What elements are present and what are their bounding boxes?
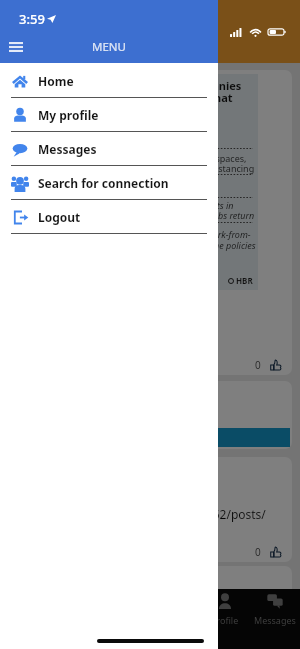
button[interactable]: Network	[50, 589, 100, 649]
staticText: Search for connection	[38, 175, 169, 191]
staticText: What companies	[150, 78, 242, 93]
staticText: enforce distancing	[176, 162, 255, 174]
button[interactable]: Post	[100, 589, 150, 649]
button[interactable]: Logout	[0, 200, 218, 234]
staticText: https://www.linkedin.com/1752/posts/	[50, 506, 266, 522]
button[interactable]: Messages	[0, 132, 218, 166]
staticText: 0	[255, 358, 261, 372]
button[interactable]	[0, 0, 300, 649]
staticText: Home	[38, 73, 74, 89]
staticText: Logout	[38, 209, 81, 225]
staticText: how and when jobs return	[150, 209, 255, 221]
staticText: HBR	[236, 275, 253, 286]
button[interactable]	[8, 381, 292, 449]
button[interactable]: Open navigation menu	[0, 36, 32, 58]
button[interactable]: Search for connection	[0, 166, 218, 200]
button[interactable]: Profile	[200, 589, 250, 649]
button[interactable]: https://www.linkedin.com/1752/posts/	[8, 457, 292, 562]
button[interactable]: Messages	[250, 589, 300, 649]
staticText: need to do that	[148, 90, 233, 105]
staticText: MENU	[92, 39, 126, 55]
staticText: 3:59	[19, 10, 45, 28]
staticText: Rethink work-from-	[174, 228, 251, 240]
staticText: 0	[255, 545, 261, 559]
button[interactable]: My profile	[0, 98, 218, 132]
staticText: Reconfigure spaces,	[162, 152, 247, 164]
button[interactable]: What companies	[8, 70, 292, 375]
staticText: Prepare for shifts in	[155, 199, 234, 211]
staticText: My profile	[38, 107, 99, 123]
button[interactable]: Home	[0, 64, 218, 98]
staticText: Profile	[211, 614, 239, 626]
staticText: Messages	[254, 614, 296, 626]
button[interactable]: Jobs	[150, 589, 200, 649]
staticText: Messages	[38, 141, 97, 157]
staticText: home policies	[201, 239, 256, 251]
